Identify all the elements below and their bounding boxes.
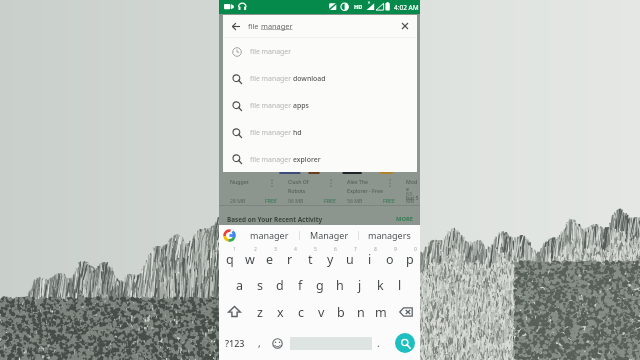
button[interactable]: , bbox=[250, 326, 268, 360]
button[interactable]: 8 bbox=[360, 245, 380, 271]
staticText: file manager bbox=[250, 74, 293, 83]
button[interactable]: a bbox=[229, 271, 250, 297]
staticText: 0 bbox=[414, 246, 417, 253]
button[interactable]: 3 bbox=[260, 245, 280, 271]
staticText: 5 bbox=[314, 246, 317, 253]
staticText: Robots bbox=[288, 187, 306, 194]
staticText: manager bbox=[261, 21, 293, 31]
staticText: 56 MB bbox=[347, 197, 363, 204]
button[interactable]: 4 bbox=[280, 245, 300, 271]
button[interactable]: g bbox=[310, 271, 330, 297]
button[interactable]: f bbox=[290, 271, 310, 297]
button[interactable]: x bbox=[270, 298, 291, 325]
button[interactable]: Back bbox=[223, 15, 248, 37]
staticText: i bbox=[368, 251, 372, 268]
button[interactable]: 2 bbox=[240, 245, 260, 271]
staticText: k bbox=[377, 277, 384, 294]
staticText: Based on Your Recent Activity bbox=[227, 215, 323, 224]
button[interactable]: j bbox=[350, 271, 370, 297]
staticText: , bbox=[258, 336, 261, 350]
button[interactable]: 0 bbox=[400, 245, 420, 271]
staticText: f bbox=[298, 277, 303, 294]
staticText: managers bbox=[368, 229, 411, 241]
button[interactable]: k bbox=[370, 271, 390, 297]
button[interactable]: Emoji bbox=[268, 326, 287, 360]
staticText: v bbox=[318, 304, 325, 321]
button[interactable]: Search bbox=[395, 333, 415, 353]
staticText: hd bbox=[293, 128, 302, 137]
staticText: file manager bbox=[250, 155, 293, 164]
staticText: file bbox=[248, 21, 261, 31]
button[interactable]: n bbox=[351, 298, 371, 325]
staticText: Nugget bbox=[230, 178, 249, 185]
staticText: Mode bbox=[406, 178, 420, 192]
staticText: 96 MB bbox=[288, 197, 304, 204]
button[interactable]: Clear search bbox=[392, 15, 417, 37]
staticText: 63 MB bbox=[406, 190, 420, 204]
button[interactable]: ?123 bbox=[219, 326, 250, 360]
staticText: 4:02 AM bbox=[394, 3, 419, 12]
staticText: Clash Of bbox=[288, 178, 309, 185]
button[interactable]: Shift bbox=[219, 298, 249, 325]
button[interactable]: file manager bbox=[223, 146, 417, 172]
button[interactable]: Clash Of bbox=[277, 175, 336, 207]
button[interactable]: c bbox=[291, 298, 311, 325]
button[interactable]: b bbox=[331, 298, 351, 325]
button[interactable]: Backspace bbox=[391, 298, 420, 325]
staticText: b bbox=[337, 304, 345, 321]
button[interactable]: 9 bbox=[380, 245, 400, 271]
button[interactable]: Alex The bbox=[336, 175, 395, 207]
button[interactable]: . bbox=[369, 326, 387, 360]
staticText: bat 5 bbox=[406, 194, 419, 201]
button[interactable]: l bbox=[390, 271, 410, 297]
staticText: 3 bbox=[274, 246, 277, 253]
staticText: . bbox=[377, 336, 380, 350]
staticText: j bbox=[358, 277, 362, 294]
staticText: r bbox=[287, 251, 293, 268]
button[interactable]: file manager bbox=[223, 119, 417, 146]
button[interactable]: 1 bbox=[219, 245, 240, 271]
staticText: c bbox=[298, 304, 305, 321]
button[interactable]: manager bbox=[240, 225, 299, 245]
button[interactable]: h bbox=[330, 271, 350, 297]
button[interactable]: Nugget bbox=[219, 175, 277, 207]
staticText: 9 bbox=[394, 246, 397, 253]
staticText: 1 bbox=[233, 246, 236, 253]
button[interactable]: file manager bbox=[223, 92, 417, 119]
staticText: n bbox=[357, 304, 365, 321]
staticText: 28 MB bbox=[230, 197, 246, 204]
button[interactable]: file manager bbox=[223, 65, 417, 92]
button[interactable]: managers bbox=[359, 225, 420, 245]
button[interactable]: Space bbox=[287, 326, 369, 360]
button[interactable]: Google bbox=[224, 230, 235, 241]
button[interactable]: 6 bbox=[320, 245, 340, 271]
button[interactable]: Manager bbox=[300, 225, 358, 245]
button[interactable]: Mode bbox=[395, 175, 420, 207]
staticText: 4 bbox=[294, 246, 297, 253]
staticText: FREE bbox=[265, 197, 277, 204]
staticText: file manager bbox=[250, 47, 292, 56]
staticText: h bbox=[336, 277, 344, 294]
staticText: HD bbox=[354, 3, 363, 10]
staticText: download bbox=[293, 74, 326, 83]
staticText: y bbox=[327, 251, 334, 268]
button[interactable]: Based on Your Recent Activity bbox=[219, 212, 420, 226]
staticText: Manager bbox=[310, 229, 349, 241]
staticText: q bbox=[226, 251, 234, 268]
button[interactable]: 7 bbox=[340, 245, 360, 271]
button[interactable]: 5 bbox=[300, 245, 320, 271]
staticText: t bbox=[308, 251, 313, 268]
button[interactable]: Back bbox=[223, 15, 417, 37]
button[interactable]: s bbox=[250, 271, 270, 297]
button[interactable]: v bbox=[311, 298, 331, 325]
button[interactable]: m bbox=[371, 298, 391, 325]
button[interactable]: file manager bbox=[223, 38, 417, 65]
staticText: FREE bbox=[383, 197, 395, 204]
staticText: p bbox=[406, 251, 414, 268]
button[interactable]: d bbox=[270, 271, 290, 297]
staticText: file manager bbox=[250, 128, 293, 137]
staticText: o bbox=[386, 251, 394, 268]
staticText: ?123 bbox=[225, 337, 245, 349]
button[interactable]: z bbox=[249, 298, 270, 325]
staticText: d bbox=[276, 277, 284, 294]
